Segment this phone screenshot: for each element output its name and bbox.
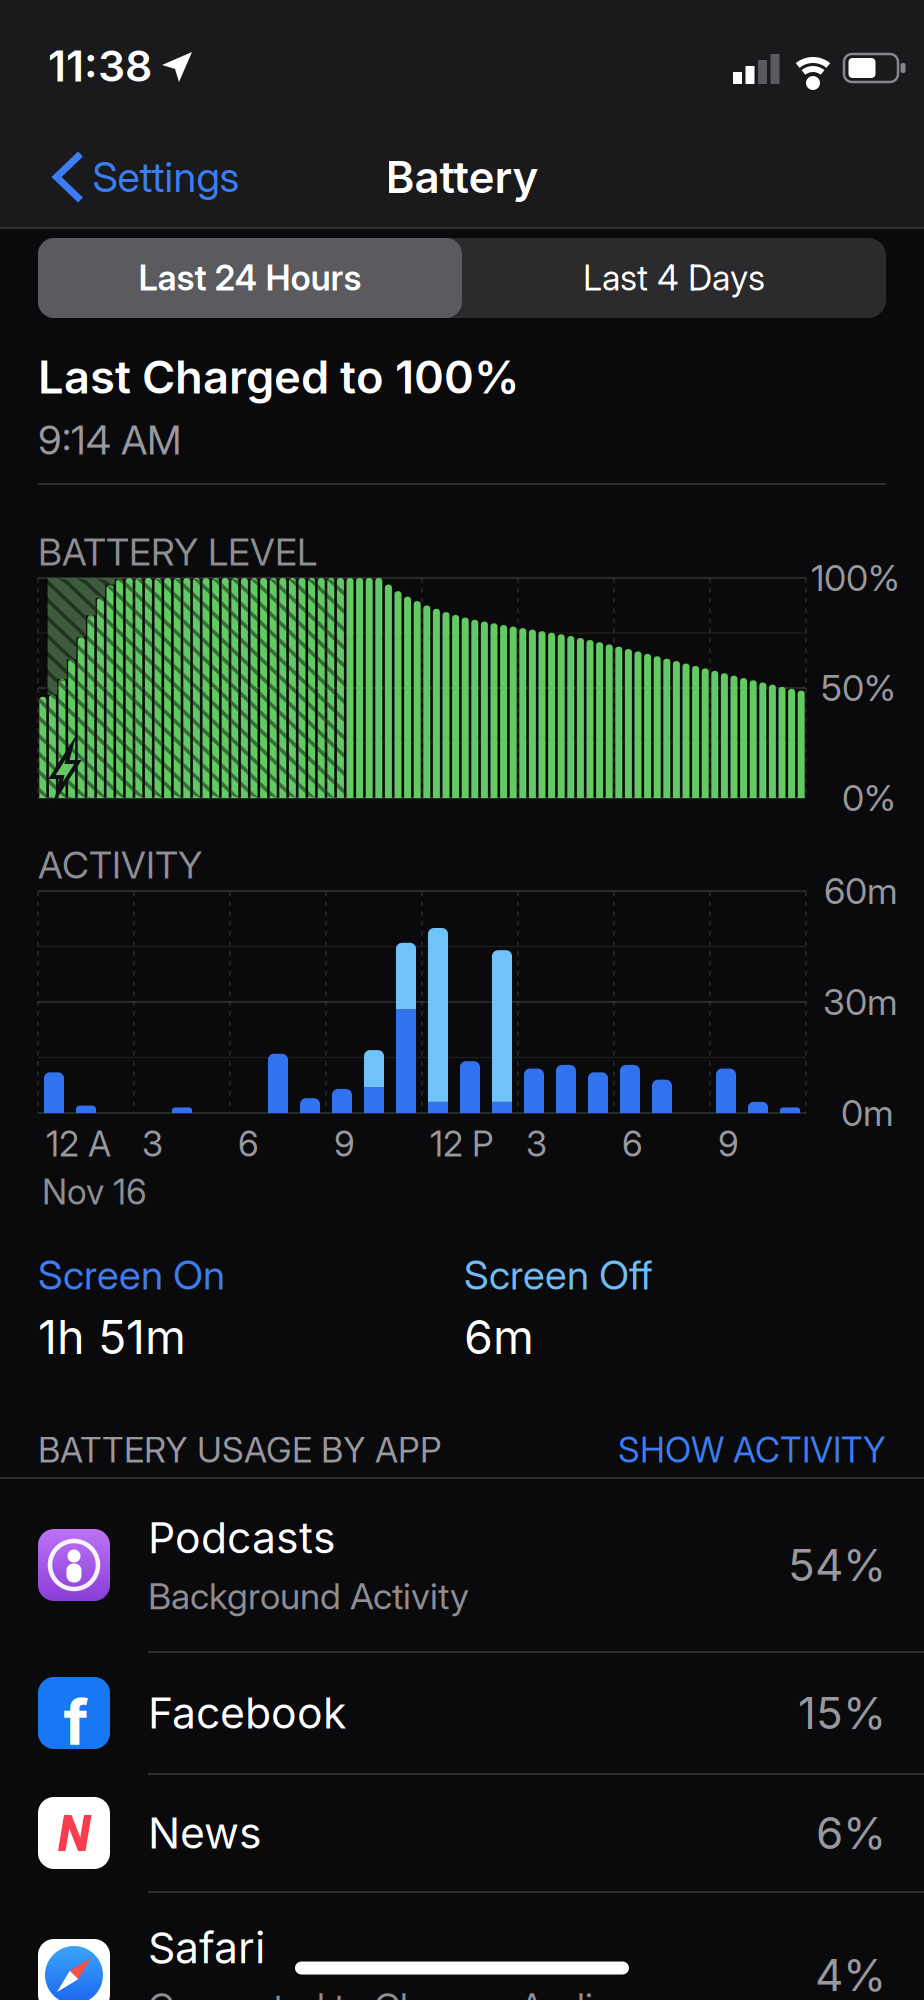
staticText: Last 4 Days — [583, 258, 765, 298]
staticText: 12 P — [430, 1124, 494, 1164]
staticText: 6m — [464, 1309, 534, 1365]
button[interactable]: Safari — [0, 1888, 924, 2000]
staticText: ACTIVITY — [38, 843, 202, 887]
staticText: 12 A — [46, 1124, 111, 1164]
staticText: 3 — [526, 1124, 547, 1164]
staticText: Connected to Charger, Audio — [148, 1985, 613, 2000]
staticText: 100% — [811, 557, 900, 599]
staticText: Nov 16 — [42, 1172, 147, 1212]
staticText: 30m — [823, 981, 898, 1023]
button[interactable]: Podcasts — [0, 1478, 924, 1652]
staticText: Last Charged to 100% — [38, 350, 520, 404]
staticText: Safari — [148, 1923, 265, 1973]
staticText: 60m — [824, 870, 898, 912]
staticText: 0m — [841, 1092, 894, 1134]
staticText: 9:14 AM — [38, 416, 181, 464]
button[interactable]: News — [0, 1774, 924, 1892]
staticText: 9 — [718, 1124, 739, 1164]
staticText: Settings — [92, 153, 239, 201]
staticText: 6% — [816, 1807, 886, 1859]
staticText: Facebook — [148, 1688, 346, 1738]
staticText: f — [63, 1685, 88, 1759]
staticText: 11:38 — [48, 41, 152, 91]
staticText: News — [148, 1808, 262, 1858]
staticText: 1h 51m — [38, 1309, 186, 1365]
button[interactable]: SHOW ACTIVITY — [446, 1430, 886, 1470]
staticText: 9 — [334, 1124, 355, 1164]
staticText: 6 — [622, 1124, 643, 1164]
staticText: 3 — [142, 1124, 163, 1164]
staticText: 54% — [788, 1539, 886, 1591]
staticText: BATTERY USAGE BY APP — [38, 1430, 442, 1470]
button[interactable]: Last 24 Hours — [38, 238, 462, 318]
staticText: 50% — [821, 667, 896, 709]
staticText: 0% — [842, 777, 896, 819]
staticText: 4% — [815, 1949, 886, 2000]
staticText: Battery — [385, 151, 538, 203]
staticText: Screen Off — [464, 1251, 653, 1299]
staticText: 6 — [238, 1124, 259, 1164]
button[interactable]: Last 4 Days — [462, 238, 886, 318]
staticText: SHOW ACTIVITY — [618, 1430, 886, 1470]
staticText: Last 24 Hours — [138, 258, 361, 298]
staticText: BATTERY LEVEL — [38, 530, 317, 574]
staticText: Podcasts — [148, 1513, 336, 1563]
staticText: Background Activity — [148, 1575, 469, 1617]
staticText: 15% — [798, 1687, 886, 1739]
button[interactable]: f — [0, 1652, 924, 1774]
staticText: Screen On — [38, 1251, 225, 1299]
button[interactable]: Settings — [56, 153, 239, 201]
